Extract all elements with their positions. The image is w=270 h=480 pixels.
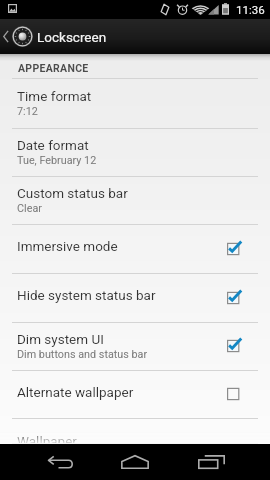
button[interactable]: Home xyxy=(95,444,175,480)
button[interactable]: Recent apps xyxy=(171,444,251,480)
staticText: 7:12 xyxy=(17,105,38,118)
staticText: Lockscreen xyxy=(37,29,107,45)
button[interactable]: Dim system UI xyxy=(0,323,270,371)
button[interactable]: Back xyxy=(20,444,100,480)
staticText: APPEARANCE xyxy=(18,62,89,74)
staticText: 11:36 xyxy=(236,3,265,16)
button[interactable]: Checked xyxy=(227,242,243,256)
staticText: Custom status bar xyxy=(17,185,128,201)
button[interactable]: Navigate up, Lockscreen xyxy=(0,19,270,54)
staticText: Alternate wallpaper xyxy=(17,384,134,400)
staticText: Wallpaper xyxy=(17,433,77,449)
button[interactable]: Custom status bar xyxy=(0,177,270,225)
staticText: Time format xyxy=(17,88,92,104)
staticText: Date format xyxy=(17,137,89,153)
staticText: Clear xyxy=(17,202,42,215)
staticText: Immersive mode xyxy=(17,238,118,254)
button[interactable]: Date format xyxy=(0,129,270,177)
button[interactable]: Alternate wallpaper xyxy=(0,371,270,419)
button[interactable]: Checked xyxy=(227,339,243,353)
button[interactable]: Wallpaper xyxy=(0,419,270,444)
staticText: Dim buttons and status bar xyxy=(17,348,148,361)
staticText: Dim system UI xyxy=(17,331,104,347)
button[interactable]: Not checked xyxy=(227,387,243,401)
staticText: Tue, February 12 xyxy=(17,154,97,167)
button[interactable]: Immersive mode xyxy=(0,225,270,274)
button[interactable]: Time format xyxy=(0,79,270,129)
button[interactable]: Checked xyxy=(227,291,243,305)
staticText: Hide system status bar xyxy=(17,287,156,303)
button[interactable]: Hide system status bar xyxy=(0,274,270,323)
